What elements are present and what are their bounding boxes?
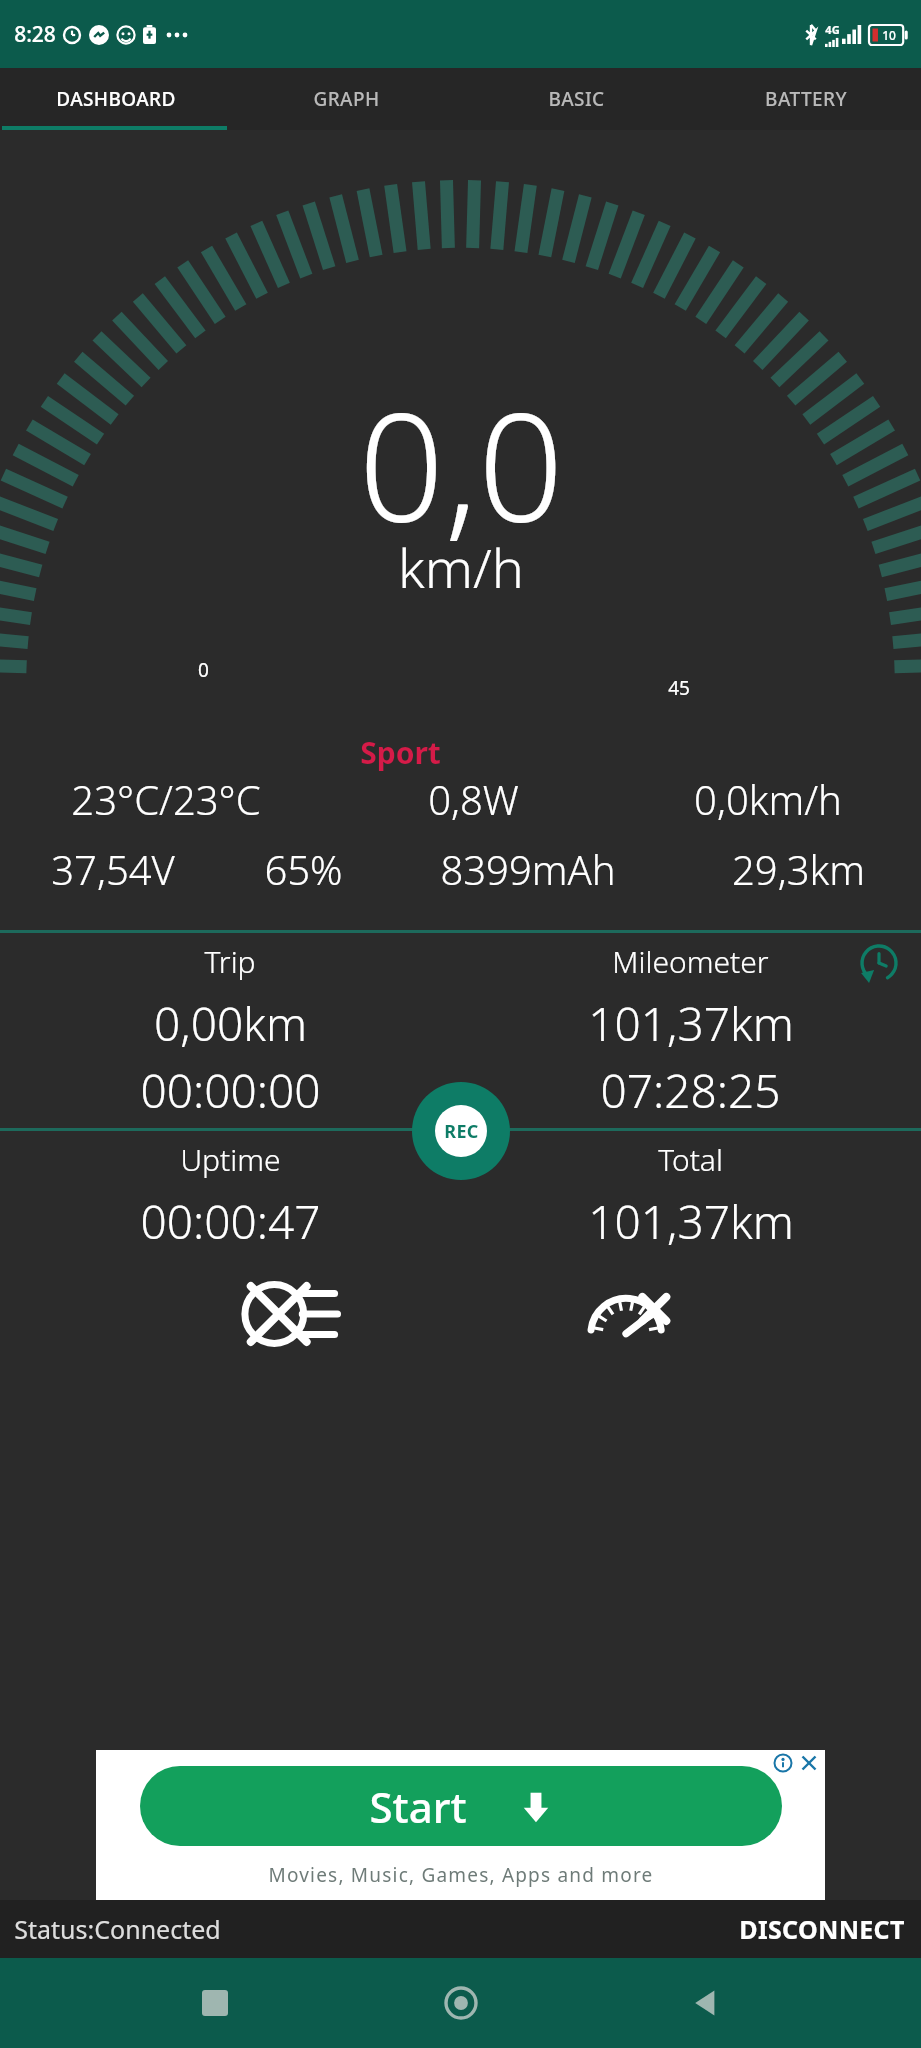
button[interactable]: Record	[412, 1082, 510, 1180]
staticText: 00:00:00	[140, 1059, 321, 1122]
button[interactable]: Close ad	[799, 1753, 819, 1773]
staticText: 23°C/23°C	[71, 772, 261, 826]
staticText: 4G	[825, 22, 840, 37]
button[interactable]: Home	[431, 1973, 491, 2033]
button[interactable]: Start	[96, 1750, 825, 1900]
staticText: Sport	[360, 732, 441, 773]
staticText: 0,0	[358, 362, 564, 566]
staticText: 8:28	[14, 20, 56, 49]
other: Ad info	[773, 1753, 793, 1773]
button[interactable]: Trip	[0, 933, 460, 1128]
staticText: 101,37km	[588, 992, 794, 1055]
staticText: 29,3km	[732, 842, 865, 896]
button[interactable]: History	[855, 939, 903, 987]
staticText: Mileometer	[612, 941, 769, 982]
button[interactable]: Recents	[185, 1973, 245, 2033]
staticText: Uptime	[180, 1139, 281, 1180]
staticText: REC	[444, 1119, 479, 1144]
button[interactable]: BATTERY	[691, 68, 921, 130]
staticText: 0,00km	[154, 992, 307, 1055]
staticText: 0	[198, 657, 209, 683]
staticText: 07:28:25	[600, 1059, 781, 1122]
button[interactable]: DASHBOARD	[0, 68, 231, 130]
staticText: 101,37km	[588, 1190, 794, 1253]
staticText: 37,54V	[51, 842, 175, 896]
staticText: BATTERY	[765, 86, 847, 112]
button[interactable]: Cruise control off	[577, 1259, 687, 1369]
staticText: Total	[658, 1139, 723, 1180]
button[interactable]: GRAPH	[231, 68, 461, 130]
button[interactable]: Uptime	[0, 1131, 460, 1253]
staticText: 0,8W	[428, 772, 519, 826]
staticText: 0,0km/h	[694, 772, 842, 826]
staticText: GRAPH	[313, 86, 380, 112]
button[interactable]: BASIC	[461, 68, 691, 130]
staticText: 10	[882, 27, 896, 43]
staticText: DISCONNECT	[739, 1912, 905, 1946]
staticText: Movies, Music, Games, Apps and more	[268, 1862, 654, 1888]
staticText: Trip	[204, 941, 256, 982]
staticText: BASIC	[548, 86, 605, 112]
button[interactable]: Headlight off	[234, 1259, 344, 1369]
button[interactable]: Total	[460, 1131, 921, 1253]
staticText: 45	[668, 675, 690, 701]
staticText: Status:Connected	[14, 1912, 221, 1946]
button[interactable]: DISCONNECT	[723, 1912, 921, 1946]
staticText: DASHBOARD	[56, 86, 176, 112]
staticText: 00:00:47	[140, 1190, 321, 1253]
staticText: km/h	[398, 530, 524, 604]
staticText: 65%	[264, 842, 343, 896]
button[interactable]: Mileometer	[460, 933, 921, 1128]
button[interactable]: Back	[676, 1973, 736, 2033]
staticText: Start	[369, 1778, 467, 1835]
staticText: 8399mAh	[440, 842, 616, 896]
